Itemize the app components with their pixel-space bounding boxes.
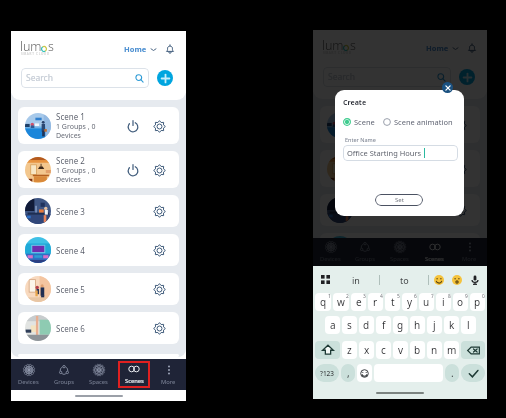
button[interactable]: More	[161, 362, 176, 388]
button[interactable]: Power	[124, 161, 142, 179]
button[interactable]: Scenes	[425, 239, 444, 265]
button[interactable]: Notifications	[465, 41, 479, 55]
button[interactable]: Set	[375, 194, 423, 206]
button[interactable]: Scenes	[118, 361, 150, 388]
button[interactable]: m	[444, 341, 459, 359]
button[interactable]: b	[410, 341, 425, 359]
button[interactable]: Spaces	[89, 362, 108, 388]
staticText: 1	[328, 293, 331, 300]
staticText: o	[457, 295, 464, 309]
button[interactable]: Voice input	[468, 273, 481, 286]
button[interactable]: Settings	[150, 161, 168, 179]
button[interactable]: Scene 4	[18, 234, 179, 266]
button[interactable]: Enter	[461, 364, 485, 382]
button[interactable]: Shift	[315, 341, 340, 359]
button[interactable]: Scene	[343, 117, 375, 127]
button[interactable]: Office Starting Hours	[343, 145, 458, 161]
staticText: Scene 5	[56, 284, 85, 295]
button[interactable]: j	[427, 316, 442, 334]
button[interactable]: Add scene	[459, 69, 475, 85]
button[interactable]: Devices	[18, 362, 39, 388]
button[interactable]: Scene animation	[383, 117, 453, 127]
button[interactable]: n	[427, 341, 442, 359]
button[interactable]: p	[470, 293, 485, 311]
button[interactable]: f	[376, 316, 391, 334]
button[interactable]: Scene 6	[18, 312, 179, 344]
button[interactable]: t	[385, 293, 400, 311]
button[interactable]: Settings	[150, 280, 168, 298]
button[interactable]: Emoji	[357, 364, 372, 382]
button[interactable]: x	[359, 341, 374, 359]
button[interactable]: Close	[442, 82, 453, 93]
button[interactable]: ?123	[315, 364, 339, 382]
button[interactable]: k	[444, 316, 459, 334]
button[interactable]: to	[380, 266, 428, 293]
staticText: lum	[322, 37, 344, 54]
button[interactable]: y	[402, 293, 417, 311]
button[interactable]: Settings	[451, 116, 469, 134]
button[interactable]: d	[359, 316, 374, 334]
button[interactable]: Notifications	[163, 42, 177, 56]
button[interactable]: Settings	[150, 319, 168, 337]
button[interactable]: Emoji grin	[432, 273, 445, 286]
button[interactable]: Scene 2	[320, 150, 480, 187]
button[interactable]: Groups	[54, 362, 74, 388]
staticText: r	[373, 295, 378, 309]
button[interactable]: h	[410, 316, 425, 334]
button[interactable]: Groups	[355, 239, 375, 265]
button[interactable]: Power	[425, 116, 443, 134]
button[interactable]: q	[315, 293, 331, 311]
button[interactable]: Search	[21, 68, 149, 88]
button[interactable]: w	[333, 293, 349, 311]
button[interactable]: Keyboard menu	[319, 273, 332, 286]
button[interactable]: Emoji worried	[450, 273, 463, 286]
button[interactable]: .	[445, 364, 459, 382]
button[interactable]: Devices	[320, 239, 341, 265]
button[interactable]: Scene 2	[18, 151, 179, 188]
button[interactable]: Settings	[451, 160, 469, 178]
button[interactable]: Settings	[150, 202, 168, 220]
button[interactable]: Power	[124, 117, 142, 135]
button[interactable]: z	[342, 341, 357, 359]
staticText: Search	[26, 72, 53, 84]
button[interactable]: Home	[121, 42, 159, 56]
button[interactable]: Scene 5	[18, 273, 179, 305]
button[interactable]: Add scene	[157, 70, 173, 86]
button[interactable]: a	[325, 316, 340, 334]
staticText: Scenes	[425, 255, 444, 263]
button[interactable]: Settings	[150, 241, 168, 259]
button[interactable]: o	[453, 293, 468, 311]
staticText: l	[467, 318, 470, 332]
button[interactable]: i	[436, 293, 451, 311]
staticText: Devices	[320, 255, 341, 263]
button[interactable]: u	[419, 293, 434, 311]
button[interactable]: r	[368, 293, 383, 311]
staticText: h	[414, 318, 421, 332]
button[interactable]: in	[332, 266, 379, 293]
button[interactable]: g	[393, 316, 408, 334]
button[interactable]: v	[393, 341, 408, 359]
button[interactable]: More	[462, 239, 477, 265]
staticText: Search	[328, 71, 355, 83]
button[interactable]: Scene 3	[18, 195, 179, 227]
button[interactable]: Settings	[451, 201, 469, 219]
button[interactable]: Settings	[150, 117, 168, 135]
button[interactable]: Home	[423, 41, 461, 55]
button[interactable]: l	[461, 316, 476, 334]
button[interactable]: Spaces	[390, 239, 409, 265]
button[interactable]: Scene 1	[320, 106, 480, 143]
button[interactable]: e	[351, 293, 366, 311]
button[interactable]: Scene 4	[320, 233, 480, 238]
button[interactable]: Power	[425, 160, 443, 178]
staticText: .	[451, 366, 454, 380]
button[interactable]: Search	[323, 67, 451, 87]
button[interactable]: s	[342, 316, 357, 334]
button[interactable]: c	[376, 341, 391, 359]
button[interactable]: Scene 1	[18, 107, 179, 144]
button[interactable]: ,	[341, 364, 355, 382]
button[interactable]: Backspace	[461, 341, 485, 359]
button[interactable]: Scene 3	[320, 194, 480, 226]
